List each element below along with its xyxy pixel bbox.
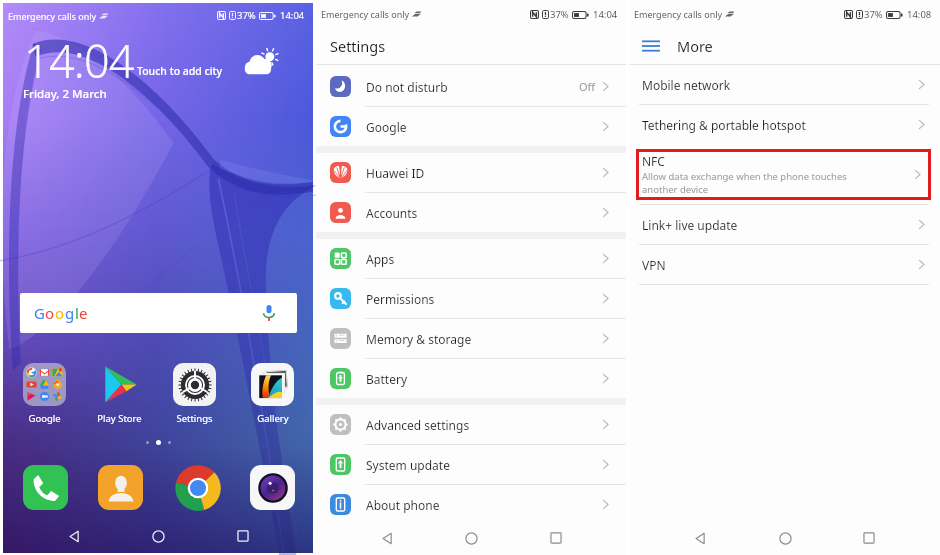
staticText: Settings xyxy=(330,36,386,56)
staticText: Play Store xyxy=(97,412,142,425)
staticText: Touch to add city xyxy=(137,64,223,78)
button[interactable]: Home xyxy=(144,522,172,550)
staticText: 14:04 xyxy=(593,8,618,21)
button[interactable]: Chrome xyxy=(174,464,222,512)
staticText: Do not disturb xyxy=(366,79,448,95)
staticText: Gallery xyxy=(257,412,289,425)
staticText: g xyxy=(65,303,75,323)
staticText: 37% xyxy=(550,8,569,21)
button[interactable]: Phone xyxy=(23,465,68,510)
staticText: Tethering & portable hotspot xyxy=(642,117,806,133)
staticText: Off xyxy=(579,79,596,94)
staticText: Link+ live update xyxy=(642,217,738,233)
staticText: G xyxy=(34,303,45,323)
staticText: 37% xyxy=(237,9,256,22)
button[interactable]: Recents xyxy=(855,524,883,552)
staticText: Allow data exchange when the phone touch… xyxy=(642,170,847,196)
staticText: Google xyxy=(28,412,61,425)
staticText: o xyxy=(55,303,65,323)
staticText: Settings xyxy=(176,412,213,425)
staticText: Accounts xyxy=(366,205,418,221)
staticText: Apps xyxy=(366,251,395,267)
staticText: o xyxy=(45,303,55,323)
staticText: VPN xyxy=(642,257,666,273)
staticText: Google xyxy=(366,119,407,135)
button[interactable]: Permissions xyxy=(316,279,626,318)
button[interactable]: Mobile network xyxy=(629,65,940,104)
button[interactable]: Link+ live update xyxy=(629,205,940,244)
staticText: Advanced settings xyxy=(366,417,470,433)
staticText: Battery xyxy=(366,371,408,387)
button[interactable]: Back xyxy=(686,524,714,552)
staticText: l xyxy=(75,303,79,323)
button[interactable]: Battery xyxy=(316,359,626,398)
button[interactable]: Camera xyxy=(250,465,295,510)
button[interactable]: Tethering & portable hotspot xyxy=(629,105,940,144)
button[interactable]: Huawei ID xyxy=(316,153,626,192)
button[interactable]: Play Store xyxy=(88,363,151,425)
button[interactable]: Recents xyxy=(542,524,570,552)
staticText: Friday, 2 March xyxy=(23,86,107,102)
staticText: Memory & storage xyxy=(366,331,472,347)
button[interactable]: Home xyxy=(457,524,485,552)
button[interactable]: G xyxy=(20,293,297,333)
staticText: About phone xyxy=(366,497,440,513)
staticText: Permissions xyxy=(366,291,435,307)
button[interactable]: Memory & storage xyxy=(316,319,626,358)
staticText: Emergency calls only xyxy=(8,10,97,22)
staticText: 14:04 xyxy=(280,9,305,22)
staticText: Mobile network xyxy=(642,77,731,93)
staticText: 14:04 xyxy=(24,30,134,91)
staticText: Emergency calls only xyxy=(634,8,723,20)
staticText: 37% xyxy=(864,8,883,21)
button[interactable]: Recents xyxy=(229,522,257,550)
staticText: System update xyxy=(366,457,450,473)
button[interactable]: Do not disturb xyxy=(316,67,626,106)
button[interactable]: About phone xyxy=(316,485,626,524)
button[interactable]: Back xyxy=(373,524,401,552)
button[interactable]: Contacts xyxy=(98,465,143,510)
button[interactable]: Gallery xyxy=(241,363,304,425)
staticText: NFC xyxy=(642,153,665,169)
staticText: Emergency calls only xyxy=(321,8,410,20)
staticText: Huawei ID xyxy=(366,165,425,181)
staticText: e xyxy=(79,303,88,323)
button[interactable]: Google xyxy=(13,363,76,425)
button[interactable]: Back xyxy=(60,522,88,550)
button[interactable]: Google xyxy=(316,107,626,146)
staticText: 14:08 xyxy=(907,8,932,21)
button[interactable]: Home xyxy=(771,524,799,552)
button[interactable]: System update xyxy=(316,445,626,484)
button[interactable]: Settings xyxy=(163,363,226,425)
button[interactable]: VPN xyxy=(629,245,940,284)
button[interactable]: NFC xyxy=(636,149,931,200)
button[interactable]: Menu xyxy=(642,37,660,55)
staticText: More xyxy=(677,36,713,56)
button[interactable]: Apps xyxy=(316,239,626,278)
button[interactable]: Advanced settings xyxy=(316,405,626,444)
button[interactable]: Accounts xyxy=(316,193,626,232)
